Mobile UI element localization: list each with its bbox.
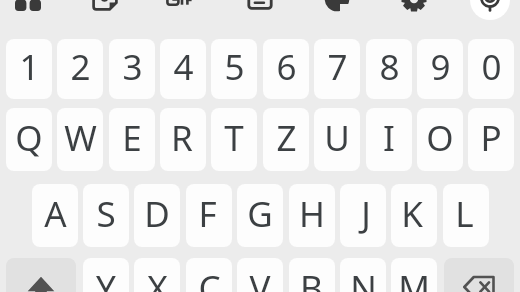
button[interactable]: J bbox=[340, 184, 386, 247]
button[interactable]: 1 bbox=[6, 39, 52, 99]
staticText: R bbox=[171, 114, 193, 162]
button[interactable]: R bbox=[160, 108, 206, 171]
button[interactable]: B bbox=[289, 258, 335, 292]
button[interactable]: Clipboard bbox=[240, 0, 280, 18]
staticText: S bbox=[96, 190, 116, 238]
button[interactable]: 9 bbox=[417, 39, 463, 99]
staticText: 1 bbox=[19, 43, 40, 91]
staticText: H bbox=[299, 190, 325, 238]
button[interactable]: Backspace bbox=[444, 258, 514, 292]
staticText: 3 bbox=[122, 43, 143, 91]
staticText: 2 bbox=[70, 43, 91, 91]
staticText: Y bbox=[96, 264, 116, 292]
staticText: W bbox=[64, 114, 97, 162]
button[interactable]: N bbox=[340, 258, 386, 292]
staticText: J bbox=[361, 190, 371, 238]
staticText: K bbox=[401, 190, 423, 238]
button[interactable]: K bbox=[391, 184, 437, 247]
button[interactable]: T bbox=[211, 108, 257, 171]
button[interactable]: I bbox=[366, 108, 412, 171]
button[interactable]: Y bbox=[83, 258, 129, 292]
button[interactable]: U bbox=[314, 108, 360, 171]
staticText: U bbox=[324, 114, 350, 162]
button[interactable]: A bbox=[32, 184, 78, 247]
button[interactable]: O bbox=[417, 108, 463, 171]
staticText: A bbox=[44, 190, 67, 238]
staticText: L bbox=[455, 190, 474, 238]
staticText: 6 bbox=[276, 43, 297, 91]
button[interactable]: W bbox=[57, 108, 103, 171]
staticText: C bbox=[198, 264, 221, 292]
button[interactable]: V bbox=[237, 258, 283, 292]
button[interactable]: 2 bbox=[57, 39, 103, 99]
staticText: Z bbox=[276, 114, 297, 162]
button[interactable]: GIF bbox=[160, 0, 200, 19]
staticText: B bbox=[300, 264, 323, 292]
button[interactable]: S bbox=[83, 184, 129, 247]
button[interactable]: L bbox=[443, 184, 489, 247]
button[interactable]: M bbox=[391, 258, 437, 292]
staticText: D bbox=[144, 190, 170, 238]
button[interactable]: P bbox=[468, 108, 514, 171]
staticText: 8 bbox=[379, 43, 400, 91]
button[interactable]: G bbox=[237, 184, 283, 247]
button[interactable]: 3 bbox=[109, 39, 155, 99]
staticText: 7 bbox=[327, 43, 348, 91]
button[interactable]: 4 bbox=[160, 39, 206, 99]
button[interactable]: C bbox=[186, 258, 232, 292]
staticText: V bbox=[249, 264, 271, 292]
staticText: 5 bbox=[224, 43, 245, 91]
staticText: Q bbox=[15, 114, 43, 162]
staticText: E bbox=[122, 114, 142, 162]
button[interactable]: 8 bbox=[366, 39, 412, 99]
button[interactable]: 5 bbox=[211, 39, 257, 99]
button[interactable]: Shift bbox=[6, 258, 76, 292]
staticText: 0 bbox=[481, 43, 502, 91]
button[interactable]: E bbox=[109, 108, 155, 171]
button[interactable]: X bbox=[134, 258, 180, 292]
staticText: 9 bbox=[430, 43, 451, 91]
staticText: N bbox=[350, 264, 377, 292]
staticText: O bbox=[426, 114, 454, 162]
staticText: 4 bbox=[173, 43, 194, 91]
staticText: G bbox=[247, 190, 273, 238]
button[interactable]: Q bbox=[6, 108, 52, 171]
button[interactable]: 6 bbox=[263, 39, 309, 99]
button[interactable]: Z bbox=[263, 108, 309, 171]
button[interactable]: Settings bbox=[394, 0, 434, 19]
staticText: X bbox=[147, 264, 168, 292]
button[interactable]: Voice input bbox=[470, 0, 510, 18]
button[interactable]: 0 bbox=[468, 39, 514, 99]
button[interactable]: Emoji bbox=[317, 0, 357, 19]
button[interactable]: F bbox=[186, 184, 232, 247]
staticText: P bbox=[480, 114, 502, 162]
button[interactable]: Stickers bbox=[85, 0, 125, 18]
staticText: T bbox=[224, 114, 244, 162]
staticText: I bbox=[383, 114, 395, 162]
button[interactable]: 7 bbox=[314, 39, 360, 99]
button[interactable]: D bbox=[134, 184, 180, 247]
staticText: M bbox=[398, 264, 430, 292]
button[interactable]: H bbox=[289, 184, 335, 247]
staticText: F bbox=[198, 190, 217, 238]
button[interactable]: Symbols keyboard bbox=[8, 0, 48, 18]
